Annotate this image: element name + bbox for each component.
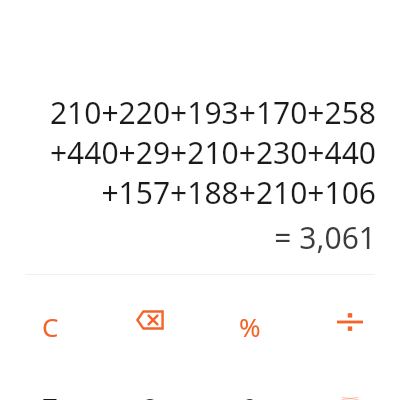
button[interactable]: C [0,275,100,363]
staticText: % [239,309,261,344]
button[interactable]: Divide [300,275,400,363]
staticText: = 3,061 [0,217,376,258]
staticText: C [42,309,59,344]
staticText: 9 [242,389,259,400]
button[interactable]: Percent [200,275,300,363]
button[interactable]: 9 [200,363,300,400]
button[interactable]: Backspace [100,275,200,363]
staticText: 210+220+193+170+258 +440+29+210+230+440 … [0,92,376,213]
staticText: 7 [42,389,59,400]
button[interactable]: Multiply [300,363,400,400]
button[interactable]: 8 [100,363,200,400]
button[interactable]: 7 [0,363,100,400]
staticText: 8 [142,389,159,400]
